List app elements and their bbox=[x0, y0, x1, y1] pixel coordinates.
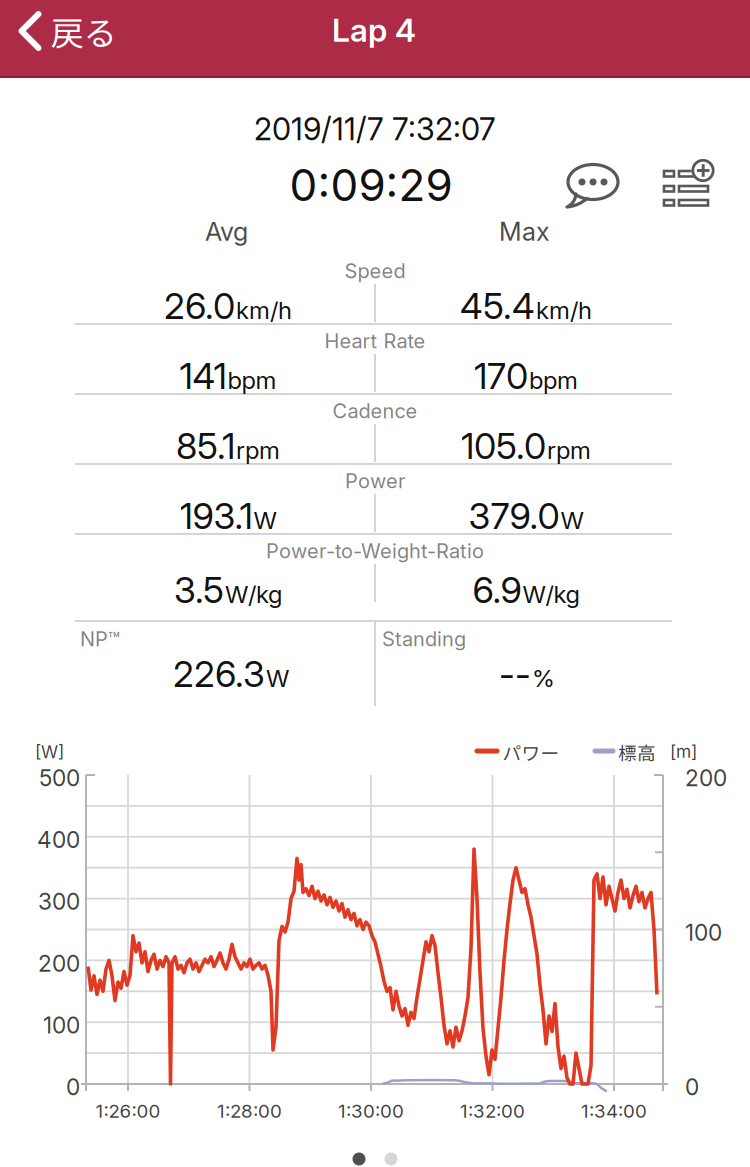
staticText: 3.5 bbox=[174, 569, 224, 611]
staticText: 1:30:00 bbox=[338, 1100, 404, 1122]
staticText: -- bbox=[499, 653, 531, 695]
staticText: 0 bbox=[685, 1074, 699, 1100]
staticText: Avg bbox=[205, 217, 248, 246]
staticText: 200 bbox=[685, 765, 727, 791]
staticText: [m] bbox=[670, 741, 697, 762]
staticText: 226.3 bbox=[173, 653, 265, 695]
staticText: W/kg bbox=[225, 580, 282, 608]
staticText: 1:32:00 bbox=[460, 1100, 525, 1122]
staticText: Lap 4 bbox=[332, 11, 416, 49]
staticText: km/h bbox=[536, 296, 592, 324]
staticText: rpm bbox=[547, 436, 591, 464]
staticText: 1:28:00 bbox=[217, 1100, 282, 1122]
staticText: 300 bbox=[38, 888, 80, 915]
staticText: 400 bbox=[37, 826, 80, 853]
staticText: 2019/11/7 7:32:07 bbox=[254, 111, 496, 147]
staticText: 193.1 bbox=[179, 495, 252, 537]
staticText: 0 bbox=[66, 1074, 80, 1100]
staticText: 標高 bbox=[618, 738, 656, 765]
staticText: 85.1 bbox=[176, 425, 235, 467]
staticText: 0:09:29 bbox=[289, 159, 452, 211]
staticText: 1:26:00 bbox=[95, 1100, 160, 1122]
button[interactable]: Add data field bbox=[655, 159, 717, 211]
staticText: 379.0 bbox=[468, 495, 559, 537]
staticText: 141 bbox=[179, 355, 226, 397]
staticText: Power bbox=[345, 469, 405, 493]
staticText: rpm bbox=[236, 436, 280, 464]
staticText: 500 bbox=[39, 765, 80, 791]
staticText: 戻る bbox=[50, 7, 116, 55]
staticText: W bbox=[266, 664, 289, 692]
staticText: 100 bbox=[685, 919, 722, 946]
staticText: 6.9 bbox=[472, 569, 521, 611]
staticText: パワー bbox=[502, 738, 559, 765]
staticText: Cadence bbox=[332, 399, 417, 423]
staticText: bpm bbox=[529, 366, 578, 394]
button[interactable]: 戻る bbox=[17, 7, 116, 55]
staticText: 26.0 bbox=[164, 285, 235, 327]
staticText: 100 bbox=[43, 1012, 80, 1038]
staticText: 200 bbox=[38, 950, 80, 977]
staticText: W bbox=[253, 506, 276, 534]
staticText: W bbox=[560, 506, 583, 534]
staticText: Max bbox=[499, 217, 550, 246]
staticText: bpm bbox=[227, 366, 276, 394]
button[interactable]: Page 1 of 2 bbox=[352, 1152, 397, 1165]
staticText: 1:34:00 bbox=[581, 1100, 647, 1122]
staticText: Standing bbox=[382, 627, 466, 651]
staticText: Power-to-Weight-Ratio bbox=[266, 539, 484, 563]
staticText: 170 bbox=[474, 355, 528, 397]
staticText: 45.4 bbox=[460, 285, 535, 327]
staticText: Heart Rate bbox=[324, 329, 425, 353]
staticText: km/h bbox=[236, 296, 292, 324]
button[interactable]: Comment bbox=[563, 161, 623, 211]
staticText: 105.0 bbox=[461, 425, 546, 467]
staticText: W/kg bbox=[522, 580, 579, 608]
staticText: [W] bbox=[35, 742, 64, 762]
staticText: % bbox=[532, 664, 555, 692]
staticText: Speed bbox=[344, 259, 405, 283]
staticText: NP™ bbox=[80, 627, 120, 651]
